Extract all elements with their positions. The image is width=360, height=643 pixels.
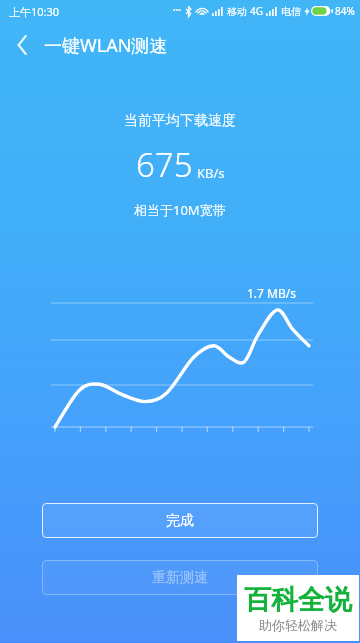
staticText: 百科全说 [244, 583, 352, 617]
staticText: 一键WLAN测速 [44, 33, 168, 58]
staticText: ••• [173, 6, 181, 16]
button[interactable]: Back [0, 23, 44, 67]
staticText: 重新测速 [152, 569, 208, 587]
button[interactable]: 完成 [42, 503, 318, 538]
staticText: 完成 [166, 512, 194, 530]
staticText: 84% [335, 4, 355, 18]
staticText: 相当于10M宽带 [134, 201, 226, 219]
staticText: 675 [136, 142, 193, 187]
staticText: KB/s [197, 164, 225, 182]
staticText: 电信 [281, 5, 301, 18]
staticText: 上午10:30 [9, 4, 60, 19]
staticText: 助你轻松解决 [259, 617, 337, 633]
staticText: 移动 [227, 5, 247, 18]
staticText: 1.7 MB/s [247, 285, 296, 301]
staticText: 当前平均下载速度 [124, 112, 236, 130]
button[interactable]: 重新测速 [42, 560, 318, 595]
staticText: 4G [250, 4, 263, 18]
